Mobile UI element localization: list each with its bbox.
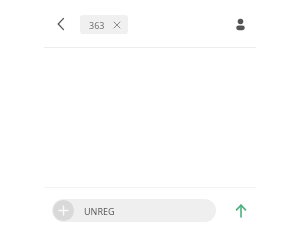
staticText: UNREG — [84, 205, 115, 217]
button[interactable]: Back — [50, 13, 72, 35]
button[interactable]: Add attachment — [52, 199, 216, 222]
button[interactable]: 363 — [80, 15, 128, 34]
button[interactable]: Account — [228, 12, 252, 36]
button[interactable]: Send — [230, 200, 252, 222]
other: Remove filter — [112, 20, 121, 29]
staticText: 363 — [89, 19, 105, 31]
button[interactable]: Add attachment — [53, 200, 74, 221]
